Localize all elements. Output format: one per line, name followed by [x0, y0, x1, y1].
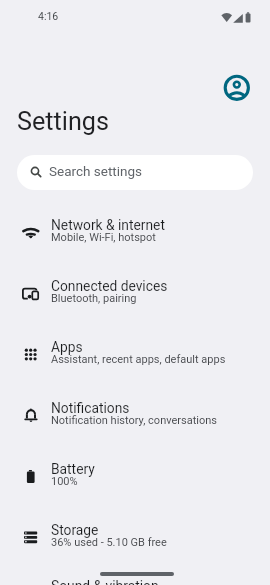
staticText: Sound & vibration — [51, 578, 159, 585]
staticText: Apps — [51, 339, 83, 355]
staticText: Notifications — [51, 400, 130, 416]
staticText: Storage — [51, 522, 99, 538]
button[interactable]: Apps — [0, 324, 270, 385]
staticText: 36% used - 5.10 GB free — [51, 536, 167, 549]
staticText: Settings — [17, 107, 109, 137]
staticText: Battery — [51, 461, 95, 477]
staticText: Mobile, Wi-Fi, hotspot — [51, 231, 156, 244]
staticText: Assistant, recent apps, default apps — [51, 353, 226, 366]
staticText: Connected devices — [51, 278, 168, 294]
button[interactable]: Network & internet — [0, 202, 270, 263]
button[interactable]: Connected devices — [0, 263, 270, 324]
staticText: 4:16 — [38, 10, 59, 22]
button[interactable]: Storage — [0, 507, 270, 568]
button[interactable] — [222, 73, 252, 103]
staticText: Notification history, conversations — [51, 414, 217, 427]
staticText: Bluetooth, pairing — [51, 292, 137, 305]
button[interactable]: Notifications — [0, 385, 270, 446]
button[interactable]: Battery — [0, 446, 270, 507]
button[interactable]: Search settings — [17, 155, 253, 190]
staticText: 100% — [51, 475, 78, 488]
staticText: Search settings — [49, 163, 143, 179]
staticText: Network & internet — [51, 217, 165, 233]
